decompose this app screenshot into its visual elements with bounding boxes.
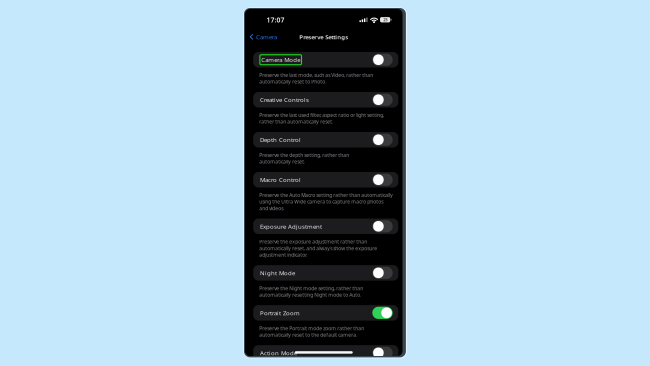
staticText: using the Ultra Wide camera to capture m…: [259, 198, 383, 205]
staticText: Portrait Zoom: [260, 309, 300, 317]
staticText: Preserve the Night mode setting, rather …: [259, 285, 363, 291]
staticText: Night Mode: [260, 269, 295, 277]
button[interactable]: Action Mode: [253, 345, 398, 361]
staticText: Preserve the last used filter, aspect ra…: [259, 112, 384, 118]
button[interactable]: Depth Control: [253, 132, 398, 147]
staticText: automatically resetting Night mode to Au…: [259, 292, 361, 298]
staticText: Exposure Adjustment: [260, 222, 322, 230]
staticText: Camera Mode: [261, 56, 300, 64]
button[interactable]: Exposure Adjustment: [253, 219, 398, 234]
button[interactable]: Camera Mode: [253, 52, 398, 67]
staticText: 17:07: [267, 15, 285, 24]
staticText: Preserve the Auto Macro setting rather t…: [259, 192, 393, 198]
staticText: Preserve the exposure adjustment rather …: [259, 238, 367, 245]
button[interactable]: Macro Control: [253, 172, 398, 187]
button[interactable]: Night Mode: [253, 265, 398, 281]
button[interactable]: Creative Controls: [253, 92, 398, 107]
staticText: Preserve the depth setting, rather than: [259, 152, 349, 158]
staticText: 23: [383, 17, 387, 22]
button[interactable]: Camera: [249, 31, 277, 42]
staticText: automatically reset, and always show the…: [259, 245, 377, 251]
staticText: automatically reset to the default camer…: [259, 332, 357, 338]
staticText: adjustment indicator.: [259, 252, 307, 258]
staticText: Preserve the last mode, such as Video, r…: [259, 72, 373, 78]
staticText: and videos.: [259, 205, 284, 211]
staticText: rather than automatically reset.: [259, 118, 333, 125]
staticText: Creative Controls: [260, 96, 309, 104]
staticText: Depth Control: [260, 136, 301, 144]
button[interactable]: Portrait Zoom: [253, 305, 398, 321]
staticText: Preserve Settings: [299, 33, 348, 41]
staticText: Macro Control: [260, 176, 301, 184]
staticText: Camera: [256, 33, 277, 41]
staticText: automatically reset.: [259, 158, 305, 165]
staticText: Action Mode: [260, 349, 297, 357]
staticText: automatically reset to Photo.: [259, 78, 326, 85]
staticText: Preserve the Portrait mode zoom rather t…: [259, 325, 364, 331]
